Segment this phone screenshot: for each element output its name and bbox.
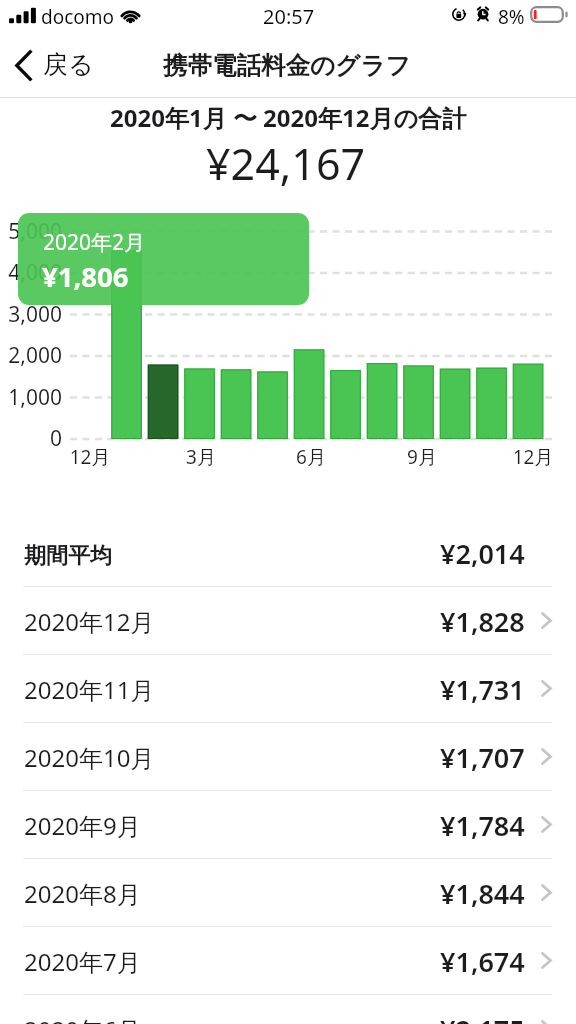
staticText: 2020年12月	[24, 605, 155, 638]
staticText: 2,000	[0, 341, 62, 370]
staticText: ¥24,167	[206, 134, 366, 193]
staticText: 4,000	[0, 258, 62, 287]
staticText: 3,000	[0, 300, 62, 329]
staticText: 2020年7月	[24, 945, 141, 978]
staticText: ¥1,707	[440, 739, 525, 776]
staticText: 5,000	[0, 217, 62, 246]
staticText: 携帯電話料金のグラフ	[163, 50, 411, 81]
staticText: 1,000	[0, 383, 62, 412]
staticText: ¥2,175	[440, 1011, 525, 1024]
button[interactable]: 期間平均	[0, 519, 576, 587]
button[interactable]: 2020年8月	[0, 859, 576, 927]
staticText: ¥1,674	[440, 943, 525, 980]
staticText: 2020年1月 〜 2020年12月の合計	[110, 101, 467, 134]
staticText: 0	[0, 424, 62, 453]
button[interactable]: 戻る	[0, 45, 106, 86]
staticText: 12月	[498, 444, 568, 470]
staticText: ¥2,014	[440, 535, 525, 572]
staticText: 3月	[166, 444, 236, 470]
staticText: 2020年2月	[43, 228, 146, 257]
button[interactable]: 2020年10月	[0, 723, 576, 791]
staticText: 2020年6月	[24, 1013, 141, 1024]
staticText: 9月	[387, 444, 457, 470]
staticText: ¥1,844	[440, 875, 525, 912]
staticText: ¥1,806	[42, 258, 129, 295]
staticText: 2020年11月	[24, 673, 155, 706]
staticText: 2020年10月	[24, 741, 155, 774]
staticText: 期間平均	[24, 542, 112, 570]
staticText: ¥1,828	[440, 603, 525, 640]
staticText: 2020年9月	[24, 809, 141, 842]
staticText: 2020年8月	[24, 877, 141, 910]
button[interactable]: 2020年6月	[0, 995, 576, 1024]
staticText: ¥1,731	[440, 671, 525, 708]
staticText: 6月	[276, 444, 346, 470]
button[interactable]: 2020年12月	[0, 587, 576, 655]
staticText: docomo	[41, 4, 115, 30]
button[interactable]: 2020年11月	[0, 655, 576, 723]
staticText: ¥1,784	[440, 807, 525, 844]
staticText: 12月	[55, 444, 125, 470]
button[interactable]: 2020年9月	[0, 791, 576, 859]
staticText: 戻る	[43, 49, 94, 80]
staticText: 8%	[498, 4, 525, 30]
button[interactable]: 2020年7月	[0, 927, 576, 995]
staticText: 20:57	[263, 3, 315, 30]
